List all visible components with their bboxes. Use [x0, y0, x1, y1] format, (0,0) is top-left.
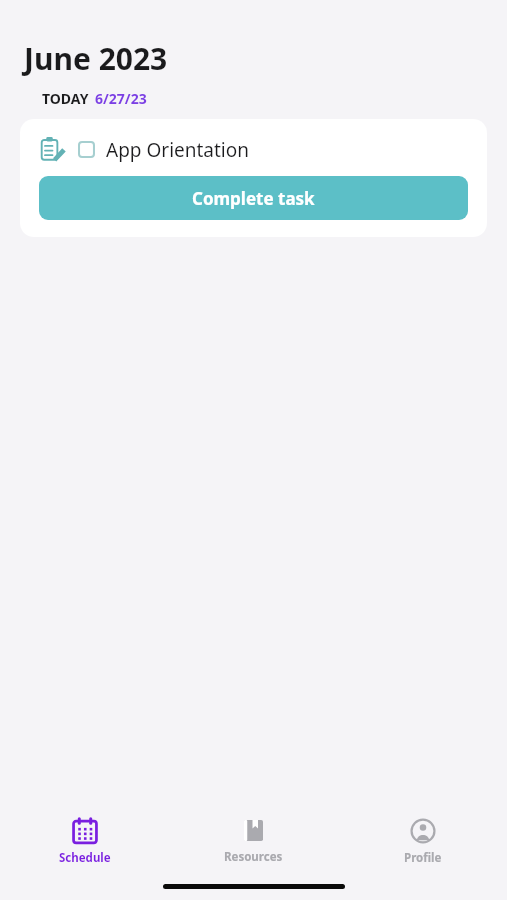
staticText: Resources [224, 849, 283, 865]
button[interactable]: Profile [338, 808, 507, 872]
staticText: 6/27/23 [95, 89, 147, 108]
staticText: Profile [404, 850, 442, 866]
button[interactable]: Schedule [0, 808, 169, 872]
staticText: Complete task [192, 187, 315, 210]
button[interactable]: Complete task [39, 176, 468, 220]
staticText: TODAY [42, 89, 89, 108]
button[interactable]: Resources [169, 808, 338, 872]
staticText: Schedule [59, 850, 111, 866]
button[interactable]: App Orientation [20, 119, 487, 237]
staticText: June 2023 [24, 38, 168, 79]
staticText: App Orientation [106, 137, 250, 163]
